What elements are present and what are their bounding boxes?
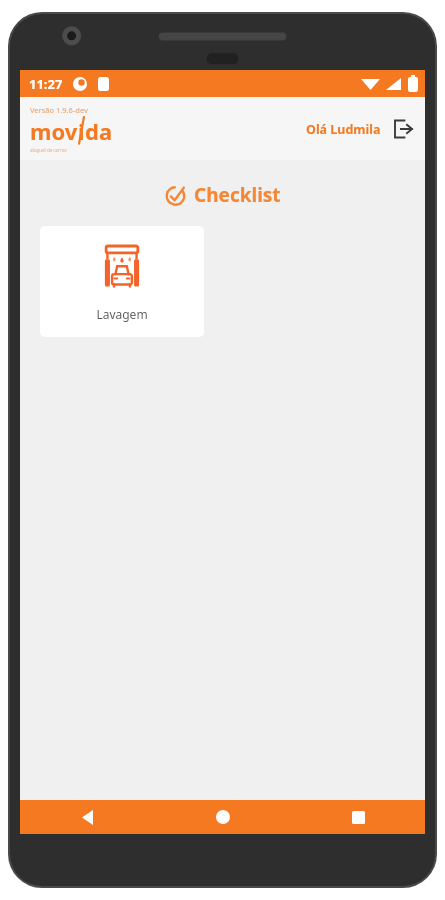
button[interactable]: Lavagem — [40, 226, 204, 337]
staticText: aluguel de carros — [30, 147, 67, 153]
staticText: Olá Ludmila — [306, 121, 381, 138]
staticText: Versão 1.9.6-dev — [30, 105, 88, 115]
button[interactable]: Voltar — [66, 800, 110, 834]
staticText: i — [78, 116, 85, 146]
button[interactable]: Sair — [391, 116, 417, 142]
button[interactable]: Recentes — [336, 800, 380, 834]
staticText: 11:27 — [29, 75, 63, 93]
staticText: mov — [30, 116, 78, 146]
button[interactable]: Início — [201, 800, 245, 834]
button[interactable]: Olá Ludmila — [306, 116, 417, 142]
staticText: Checklist — [194, 182, 281, 208]
staticText: Lavagem — [96, 306, 148, 322]
staticText: da — [85, 116, 113, 146]
